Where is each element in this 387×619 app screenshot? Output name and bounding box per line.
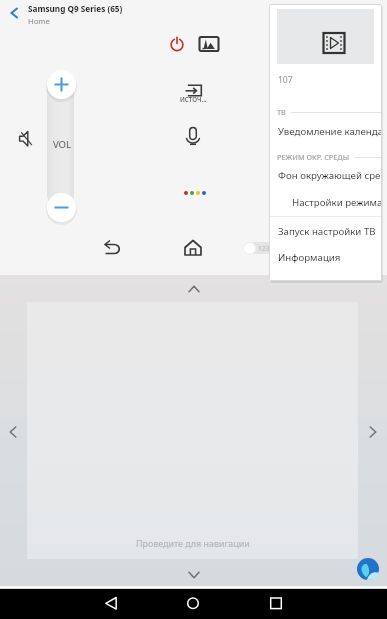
staticText: Настройки режима [292,196,382,209]
button[interactable]: Home [177,589,209,619]
button[interactable]: Recent apps [260,589,292,619]
staticText: 107 [278,74,293,86]
staticText: РЕЖИМ ОКР. СРЕДЫ [277,152,350,162]
button[interactable]: Volume up [47,70,76,99]
button[interactable]: Colour key [202,191,206,195]
button[interactable]: Фон окружающей сре [269,164,382,186]
button[interactable]: Left [1,420,25,444]
staticText: Samsung Q9 Series (65) [28,3,123,14]
button[interactable]: Back [2,1,26,25]
button[interactable]: Down [182,563,206,587]
button[interactable]: Информация [269,246,382,268]
button[interactable]: Запуск настройки ТВ [269,220,382,242]
button[interactable]: Colour key [184,191,188,195]
staticText: ТВ [277,107,286,117]
staticText: Уведомление календа [278,125,382,138]
button[interactable]: Return [100,235,126,261]
staticText: Запуск настройки ТВ [278,225,376,238]
button[interactable]: Mute [12,125,38,151]
button[interactable]: Colour key [190,191,194,195]
button[interactable]: Настройки режима [269,191,382,213]
staticText: Home [28,16,50,26]
button[interactable]: Bixby [356,557,380,581]
button[interactable]: Number pad [248,242,290,254]
button[interactable]: Power [164,31,190,57]
button[interactable]: Home [180,235,206,261]
staticText: 123/0 [258,244,276,253]
button[interactable]: Уведомление календа [269,120,382,142]
staticText: Проведите для навигации [136,537,250,549]
button[interactable]: Up [182,277,206,301]
button[interactable]: Picture mode [196,31,222,57]
staticText: Информация [278,251,341,264]
button[interactable]: Colour key [196,191,200,195]
button[interactable]: Back [95,589,127,619]
button[interactable]: Volume down [47,193,76,222]
staticText: Фон окружающей сре [278,169,381,182]
button[interactable]: Right [361,420,385,444]
button[interactable]: Voice search [180,123,206,149]
staticText: ИСТОЧ... [180,95,207,104]
staticText: VOL [53,138,72,151]
button[interactable]: Source [173,80,214,106]
